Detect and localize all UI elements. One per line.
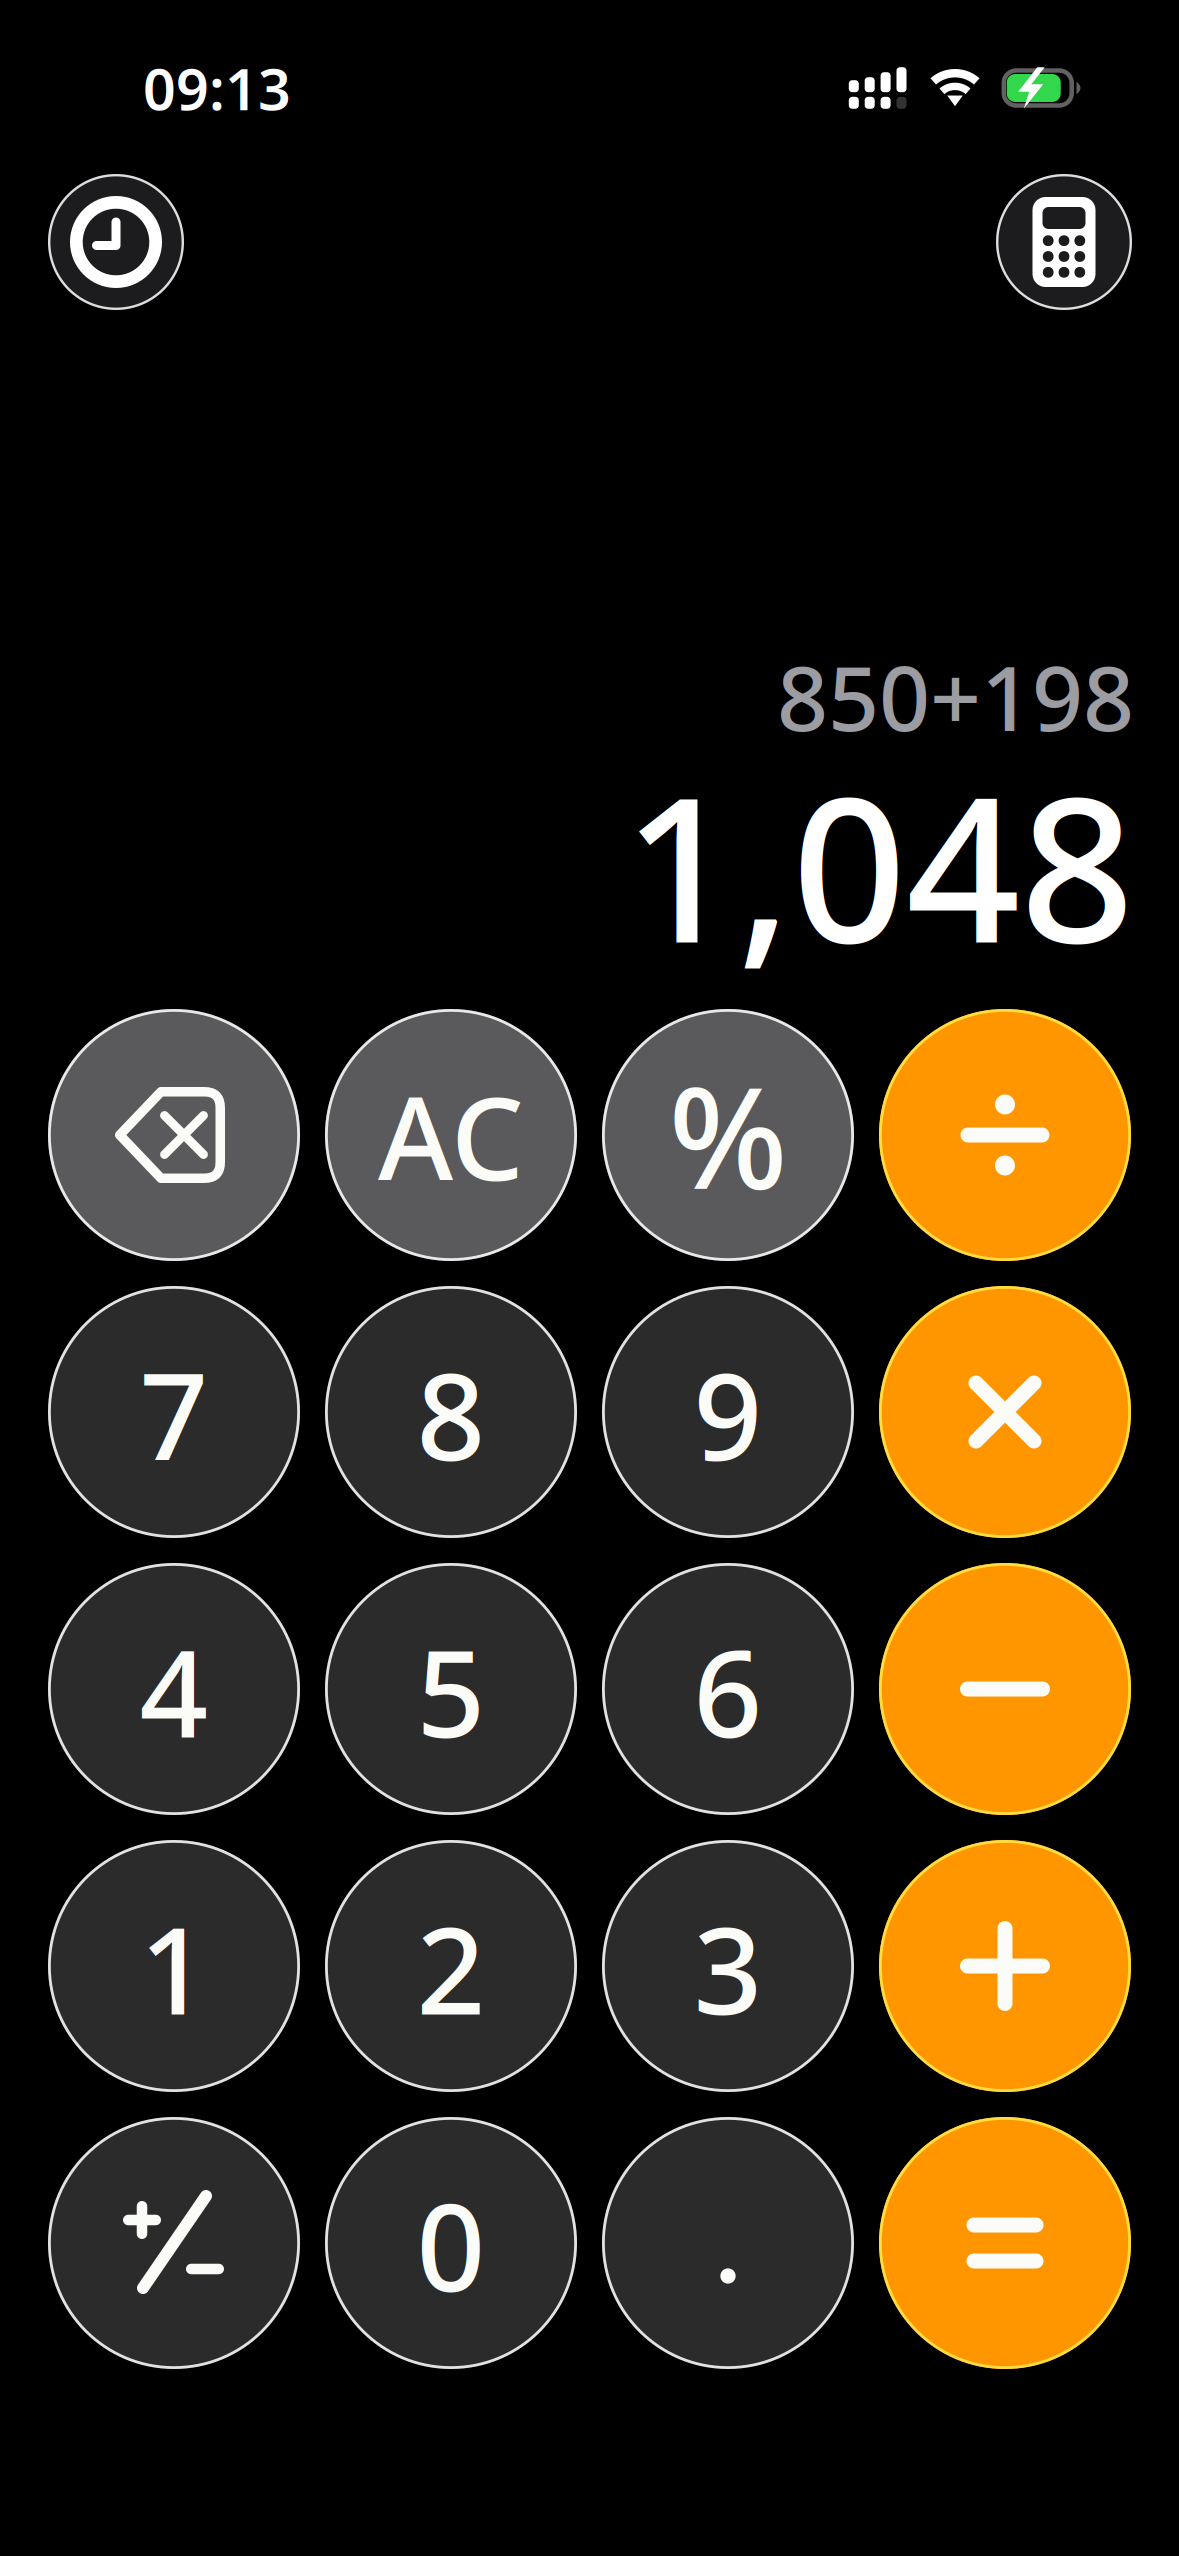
staticText: 1 (139, 1888, 208, 2048)
staticText: 4 (139, 1611, 208, 1771)
staticText: 7 (139, 1334, 208, 1494)
button[interactable]: Decimal Point (602, 2117, 854, 2369)
button[interactable]: Calculator mode (996, 174, 1132, 310)
button[interactable]: 7 (48, 1286, 300, 1538)
staticText: AC (378, 1060, 524, 1212)
staticText: 0 (416, 2165, 485, 2325)
staticText: 5 (416, 1611, 485, 1771)
button[interactable]: 9 (602, 1286, 854, 1538)
staticText: 9 (693, 1334, 762, 1494)
staticText: 3 (693, 1888, 762, 2048)
button[interactable]: 4 (48, 1563, 300, 1815)
button[interactable]: 0 (325, 2117, 577, 2369)
button[interactable]: All Clear (325, 1009, 577, 1261)
staticText: % (668, 1042, 787, 1228)
button[interactable]: Plus (879, 1840, 1131, 2092)
button[interactable]: Backspace (48, 1009, 300, 1261)
staticText: 8 (416, 1334, 485, 1494)
button[interactable]: History (48, 174, 184, 310)
staticText: 6 (693, 1611, 762, 1771)
button[interactable]: Multiply (879, 1286, 1131, 1538)
button[interactable]: 3 (602, 1840, 854, 2092)
staticText: 2 (416, 1888, 485, 2048)
button[interactable]: 5 (325, 1563, 577, 1815)
button[interactable]: Equals (879, 2117, 1131, 2369)
button[interactable]: Plus Minus (48, 2117, 300, 2369)
button[interactable]: Divide (879, 1009, 1131, 1261)
staticText: 850+198 (777, 637, 1134, 756)
button[interactable]: 2 (325, 1840, 577, 2092)
button[interactable]: 8 (325, 1286, 577, 1538)
staticText: 09:13 (143, 50, 291, 126)
staticText: 1,048 (623, 732, 1134, 998)
button[interactable]: 6 (602, 1563, 854, 1815)
button[interactable]: 1 (48, 1840, 300, 2092)
button[interactable]: Minus (879, 1563, 1131, 1815)
button[interactable]: Percent (602, 1009, 854, 1261)
